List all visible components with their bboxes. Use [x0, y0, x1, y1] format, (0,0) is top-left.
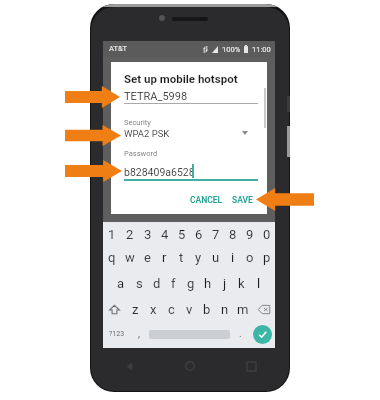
button[interactable]: q: [103, 246, 121, 268]
button[interactable]: u: [207, 246, 224, 268]
button[interactable]: s: [130, 272, 148, 294]
other: Pointer: [65, 86, 120, 108]
other: Pointer: [256, 188, 314, 211]
staticText: Set up mobile hotspot: [124, 72, 238, 85]
staticText: j: [223, 276, 227, 291]
button[interactable]: 9: [241, 223, 258, 245]
staticText: b: [203, 302, 211, 317]
button[interactable]: Security type: [237, 126, 253, 140]
staticText: e: [144, 250, 151, 265]
staticText: s: [136, 276, 143, 291]
button[interactable]: ,: [130, 322, 147, 346]
staticText: 8: [229, 227, 237, 242]
button[interactable]: 0: [258, 223, 275, 245]
staticText: .: [239, 328, 242, 340]
staticText: b828409a6528: [124, 166, 195, 178]
button[interactable]: 1: [103, 223, 121, 245]
button[interactable]: 4: [156, 223, 173, 245]
button[interactable]: Recents: [240, 355, 262, 377]
staticText: y: [195, 250, 202, 265]
staticText: 7: [212, 227, 220, 242]
staticText: AT&T: [109, 44, 128, 53]
staticText: n: [221, 302, 229, 317]
button[interactable]: 2: [121, 223, 139, 245]
staticText: t: [179, 250, 184, 265]
staticText: Security: [124, 118, 151, 127]
button[interactable]: CANCEL: [186, 192, 226, 207]
staticText: p: [263, 250, 271, 265]
button[interactable]: l: [250, 272, 267, 294]
staticText: 2: [126, 227, 134, 242]
button[interactable]: Shift: [103, 298, 126, 320]
staticText: 1: [108, 227, 116, 242]
staticText: SAVE: [232, 195, 253, 205]
button[interactable]: z: [126, 298, 144, 320]
staticText: 100%: [222, 45, 241, 54]
button[interactable]: c: [162, 298, 180, 320]
staticText: CANCEL: [190, 195, 223, 205]
button[interactable]: ?123: [103, 322, 130, 346]
staticText: 4: [161, 227, 169, 242]
button[interactable]: w: [121, 246, 139, 268]
staticText: g: [187, 276, 195, 291]
button[interactable]: .: [232, 322, 249, 346]
staticText: WPA2 PSK: [124, 128, 170, 139]
staticText: c: [168, 302, 175, 317]
button[interactable]: d: [148, 272, 165, 294]
staticText: z: [132, 302, 139, 317]
button[interactable]: y: [190, 246, 207, 268]
staticText: ,: [138, 328, 140, 340]
staticText: u: [212, 250, 220, 265]
other: Pointer: [65, 125, 121, 146]
button[interactable]: t: [173, 246, 190, 268]
button[interactable]: p: [258, 246, 275, 268]
staticText: v: [186, 302, 193, 317]
staticText: 11:00: [252, 45, 271, 54]
staticText: d: [153, 276, 161, 291]
button[interactable]: 8: [224, 223, 241, 245]
button[interactable]: Space: [147, 322, 232, 346]
staticText: Password: [124, 149, 158, 158]
staticText: f: [171, 276, 176, 291]
staticText: a: [117, 276, 125, 291]
button[interactable]: b: [198, 298, 216, 320]
staticText: h: [204, 276, 212, 291]
staticText: m: [237, 302, 249, 317]
staticText: k: [238, 276, 245, 291]
button[interactable]: m: [234, 298, 252, 320]
staticText: q: [108, 250, 116, 265]
button[interactable]: Done: [249, 322, 275, 346]
button[interactable]: Backspace: [252, 298, 275, 320]
button[interactable]: i: [224, 246, 241, 268]
button[interactable]: v: [180, 298, 198, 320]
staticText: l: [257, 276, 261, 291]
button[interactable]: h: [199, 272, 216, 294]
button[interactable]: Back: [118, 355, 140, 377]
button[interactable]: k: [233, 272, 250, 294]
button[interactable]: Home: [179, 355, 201, 377]
staticText: x: [150, 302, 157, 317]
button[interactable]: 6: [190, 223, 207, 245]
button[interactable]: g: [182, 272, 199, 294]
button[interactable]: 3: [139, 223, 156, 245]
button[interactable]: 7: [207, 223, 224, 245]
button[interactable]: r: [156, 246, 173, 268]
staticText: 0: [263, 227, 271, 242]
staticText: 6: [195, 227, 203, 242]
staticText: w: [125, 250, 135, 265]
staticText: r: [162, 250, 167, 265]
button[interactable]: a: [112, 272, 130, 294]
button[interactable]: e: [139, 246, 156, 268]
staticText: 9: [246, 227, 254, 242]
button[interactable]: j: [216, 272, 233, 294]
button[interactable]: SAVE: [228, 192, 257, 207]
button[interactable]: f: [165, 272, 182, 294]
button[interactable]: o: [241, 246, 258, 268]
staticText: o: [246, 250, 254, 265]
other: Pointer: [65, 160, 122, 182]
staticText: ?123: [109, 330, 125, 338]
button[interactable]: 5: [173, 223, 190, 245]
button[interactable]: n: [216, 298, 234, 320]
staticText: 3: [144, 227, 152, 242]
button[interactable]: x: [144, 298, 162, 320]
